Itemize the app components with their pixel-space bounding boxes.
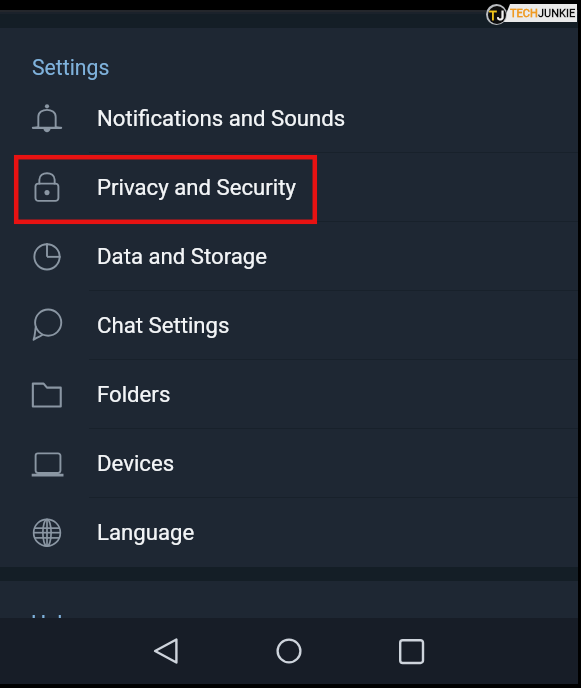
button[interactable]: Privacy and Security xyxy=(0,152,581,221)
staticText: Language xyxy=(97,519,195,545)
staticText: Folders xyxy=(97,381,171,407)
staticText: JUNKIE xyxy=(538,7,576,20)
staticText: Devices xyxy=(97,450,175,476)
button[interactable]: Back xyxy=(138,618,194,684)
button[interactable]: Notifications and Sounds xyxy=(0,83,581,152)
staticText: Privacy and Security xyxy=(97,174,296,200)
staticText: J xyxy=(497,8,505,23)
button[interactable]: Chat Settings xyxy=(0,290,581,359)
button[interactable]: Data and Storage xyxy=(0,221,581,290)
staticText: TECH xyxy=(510,7,538,20)
staticText: Help xyxy=(31,611,75,636)
staticText: Notifications and Sounds xyxy=(97,105,346,131)
button[interactable]: Help xyxy=(31,611,75,636)
button[interactable]: Settings xyxy=(32,55,110,80)
button[interactable]: Folders xyxy=(0,359,581,428)
button[interactable]: Home xyxy=(261,618,317,684)
staticText: Chat Settings xyxy=(97,312,230,338)
staticText: Settings xyxy=(32,55,110,80)
staticText: Data and Storage xyxy=(97,243,268,269)
button[interactable]: Language xyxy=(0,497,581,566)
button[interactable]: Devices xyxy=(0,428,581,497)
button[interactable]: Recent apps xyxy=(384,619,440,685)
staticText: T xyxy=(489,8,497,23)
